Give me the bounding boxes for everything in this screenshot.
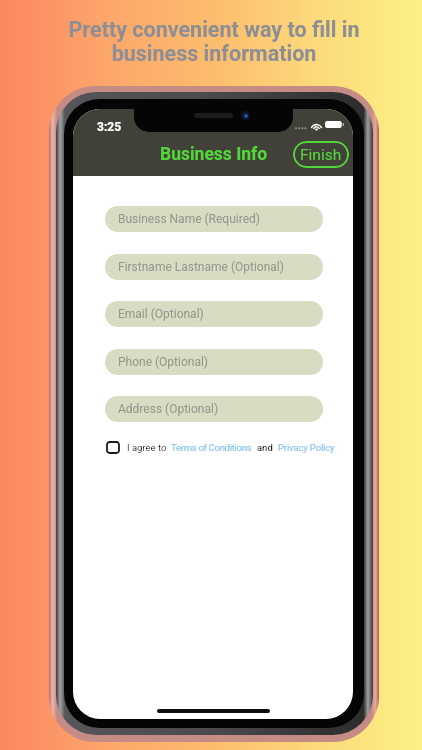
staticText: Business Info	[160, 144, 268, 165]
staticText: Firstname Lastname (Optional)	[118, 260, 284, 274]
staticText: 3:25	[97, 120, 122, 134]
staticText: and	[257, 442, 273, 453]
button[interactable]: Finish	[293, 141, 349, 168]
staticText: I agree to	[127, 442, 167, 453]
staticText: Business Name (Required)	[118, 212, 260, 226]
button[interactable]: Firstname Lastname (Optional)	[105, 254, 323, 280]
staticText: Address (Optional)	[118, 402, 219, 416]
other: Agree to terms checkbox	[107, 442, 119, 453]
staticText: Finish	[300, 146, 342, 164]
button[interactable]: Phone (Optional)	[105, 349, 323, 375]
staticText: Email (Optional)	[118, 307, 204, 321]
button[interactable]: Agree to terms checkbox	[107, 442, 335, 453]
staticText: Pretty convenient way to fill in busines…	[3, 17, 422, 66]
button[interactable]: Address (Optional)	[105, 396, 323, 422]
button[interactable]: Email (Optional)	[105, 301, 323, 327]
button[interactable]: Business Name (Required)	[105, 206, 323, 232]
button[interactable]: Privacy Policy	[278, 442, 335, 453]
button[interactable]: Terms of Conditions	[171, 442, 252, 453]
staticText: Phone (Optional)	[118, 355, 209, 369]
